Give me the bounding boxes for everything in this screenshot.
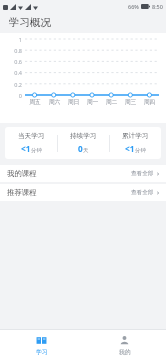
staticText: 66% — [128, 3, 139, 10]
staticText: <1 — [125, 143, 135, 154]
staticText: 累计学习 — [122, 132, 149, 140]
staticText: 分钟 — [135, 147, 146, 154]
staticText: 我的 — [119, 348, 131, 355]
staticText: 查看全部 — [131, 170, 154, 177]
staticText: 0.2 — [0, 81, 22, 88]
staticText: 周二 — [102, 98, 121, 105]
staticText: 0.8 — [0, 47, 22, 54]
staticText: 周日 — [64, 98, 83, 105]
staticText: 周一 — [83, 98, 102, 105]
staticText: 分钟 — [31, 147, 42, 154]
staticText: 持续学习 — [70, 132, 97, 140]
button[interactable]: 推荐课程 — [0, 184, 166, 201]
staticText: 周五 — [25, 98, 45, 105]
staticText: 0 — [0, 92, 22, 99]
staticText: 天 — [83, 147, 89, 154]
staticText: 学习 — [36, 348, 48, 355]
staticText: 推荐课程 — [7, 188, 37, 197]
staticText: 0.4 — [0, 69, 22, 76]
staticText: 0.6 — [0, 58, 22, 65]
staticText: <1 — [21, 143, 31, 154]
staticText: 0 — [78, 143, 83, 154]
staticText: 我的课程 — [7, 169, 37, 178]
button[interactable]: 学习 — [0, 330, 83, 360]
button[interactable]: 当天学习 — [5, 127, 57, 159]
button[interactable]: 我的课程 — [0, 165, 166, 182]
staticText: 1 — [0, 36, 22, 43]
staticText: 周六 — [45, 98, 64, 105]
staticText: 学习概况 — [9, 16, 51, 29]
staticText: 周三 — [121, 98, 140, 105]
button[interactable]: 累计学习 — [110, 127, 161, 159]
staticText: 查看全部 — [131, 189, 154, 196]
staticText: 周四 — [140, 98, 159, 105]
staticText: 8:50 — [152, 3, 163, 10]
staticText: 当天学习 — [18, 132, 45, 140]
button[interactable]: 持续学习 — [58, 127, 109, 159]
button[interactable]: 我的 — [83, 330, 166, 360]
